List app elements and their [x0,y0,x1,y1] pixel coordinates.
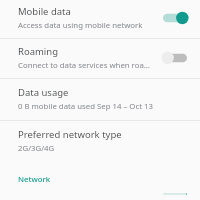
staticText: Access data using mobile network [18,20,143,31]
staticText: Mobile data [18,5,71,18]
button[interactable]: Mobile data [158,7,192,29]
staticText: 2G/3G/4G [18,143,55,154]
staticText: Network [18,174,51,185]
button[interactable]: Preferred network type [0,121,200,160]
button[interactable]: Roaming [0,39,200,76]
staticText: 0 B mobile data used Sep 14 – Oct 13 [18,101,153,112]
staticText: Preferred network type [18,128,122,141]
button[interactable]: Mobile data [0,0,200,36]
button[interactable]: Automatically select network [158,193,192,195]
staticText: Roaming [18,45,59,58]
button[interactable]: Roaming [158,47,192,69]
staticText: Data usage [18,86,69,99]
button[interactable]: Automatically select network [0,189,200,200]
staticText: Connect to data services when roaming [18,60,154,71]
button[interactable]: Data usage [0,79,200,118]
